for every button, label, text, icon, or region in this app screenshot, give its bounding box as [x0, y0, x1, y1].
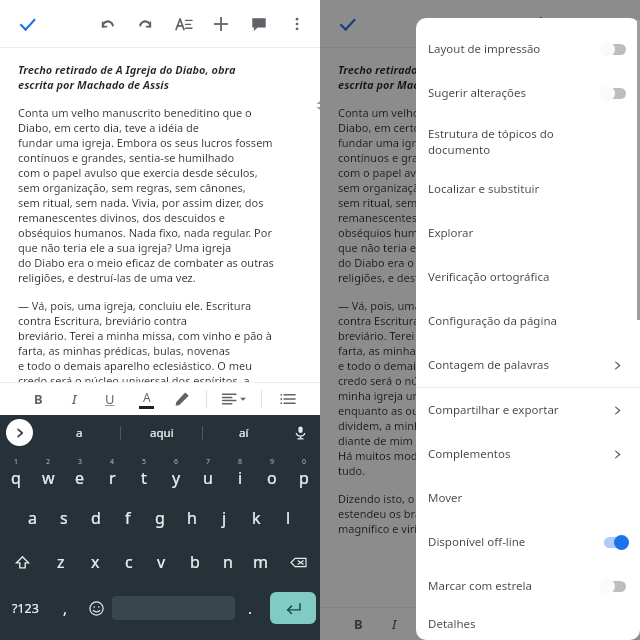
- button[interactable]: Contagem de palavras: [416, 343, 640, 387]
- button[interactable]: s: [48, 496, 80, 540]
- staticText: religiões, e destruí-las de uma vez.: [18, 270, 196, 285]
- button[interactable]: Redo: [446, 5, 484, 43]
- button[interactable]: aí: [203, 415, 284, 450]
- button[interactable]: More options: [598, 5, 636, 43]
- button[interactable]: Configuração da página: [416, 299, 640, 343]
- button[interactable]: Disponível off-line: [416, 520, 640, 564]
- button[interactable]: 6: [160, 450, 192, 496]
- button[interactable]: Underline: [92, 382, 128, 415]
- staticText: i: [238, 467, 243, 489]
- staticText: Explorar: [428, 225, 630, 241]
- staticText: breviário. Terei a minha missa, com vinh…: [18, 328, 273, 343]
- button[interactable]: Text color: [128, 382, 164, 415]
- staticText: w: [42, 467, 55, 489]
- button[interactable]: 2: [32, 450, 64, 496]
- button[interactable]: Backspace: [277, 540, 320, 584]
- staticText: Trecho retirado de A Igreja do Diabo, ob…: [338, 62, 556, 92]
- button[interactable]: Compartilhar e exportar: [416, 388, 640, 432]
- button[interactable]: Estrutura de tópicos do documento: [416, 115, 640, 167]
- button[interactable]: Alignment: [213, 382, 255, 415]
- button[interactable]: Bold: [340, 607, 376, 640]
- staticText: u: [203, 467, 213, 489]
- button[interactable]: Detalhes: [416, 608, 640, 640]
- button[interactable]: Insert: [202, 5, 240, 43]
- button[interactable]: ?123: [0, 584, 50, 632]
- staticText: tudo.: [338, 463, 366, 478]
- button[interactable]: Explorar: [416, 211, 640, 255]
- button[interactable]: x: [78, 540, 112, 584]
- button[interactable]: 7: [192, 450, 224, 496]
- button[interactable]: 1: [0, 450, 32, 496]
- button[interactable]: Scroll: [305, 90, 335, 120]
- button[interactable]: 8: [224, 450, 256, 496]
- button[interactable]: Format: [484, 5, 522, 43]
- button[interactable]: Format: [164, 5, 202, 43]
- button[interactable]: Verificação ortográfica: [416, 255, 640, 299]
- staticText: diante de mim estará Maomé nem Lutero.: [338, 433, 556, 448]
- button[interactable]: 9: [256, 450, 288, 496]
- staticText: 2: [46, 457, 51, 467]
- button[interactable]: m: [244, 540, 277, 584]
- button[interactable]: Complementos: [416, 432, 640, 476]
- button[interactable]: b: [178, 540, 211, 584]
- staticText: sem ritual, sem nada. Vivia, por assim d…: [18, 195, 264, 210]
- button[interactable]: Underline: [412, 607, 448, 640]
- staticText: contra Escritura, breviário contra: [18, 313, 187, 328]
- button[interactable]: Italic: [56, 382, 92, 415]
- button[interactable]: c: [112, 540, 145, 584]
- button[interactable]: .: [235, 584, 266, 632]
- button[interactable]: Redo: [126, 5, 164, 43]
- button[interactable]: Enter: [270, 592, 316, 624]
- button[interactable]: Localizar e substituir: [416, 167, 640, 211]
- button[interactable]: Shift: [0, 540, 44, 584]
- button[interactable]: a: [38, 415, 120, 450]
- button[interactable]: aqui: [121, 415, 202, 450]
- button[interactable]: v: [145, 540, 178, 584]
- staticText: x: [91, 551, 100, 573]
- button[interactable]: Highlight: [164, 382, 200, 415]
- button[interactable]: Voice input: [284, 415, 316, 450]
- button[interactable]: Done: [330, 7, 364, 41]
- button[interactable]: Italic: [376, 607, 412, 640]
- button[interactable]: n: [211, 540, 244, 584]
- button[interactable]: Text color: [448, 607, 484, 640]
- staticText: 6: [174, 457, 179, 467]
- button[interactable]: j: [208, 496, 240, 540]
- button[interactable]: h: [176, 496, 208, 540]
- button[interactable]: Emoji: [81, 584, 112, 632]
- staticText: 9: [270, 457, 275, 467]
- button[interactable]: Comment: [560, 5, 598, 43]
- button[interactable]: Done: [10, 7, 44, 41]
- button[interactable]: g: [144, 496, 176, 540]
- button[interactable]: Insert: [522, 5, 560, 43]
- button[interactable]: Comment: [240, 5, 278, 43]
- button[interactable]: 0: [288, 450, 320, 496]
- button[interactable]: z: [44, 540, 78, 584]
- staticText: b: [190, 551, 200, 573]
- staticText: Conta um velho manuscrito beneditino que…: [338, 105, 572, 120]
- button[interactable]: d: [80, 496, 112, 540]
- button[interactable]: Mover: [416, 476, 640, 520]
- staticText: .: [248, 598, 253, 618]
- button[interactable]: Undo: [88, 5, 126, 43]
- button[interactable]: 5: [128, 450, 160, 496]
- button[interactable]: Layout de impressão: [416, 27, 640, 71]
- button[interactable]: Bold: [20, 382, 56, 415]
- button[interactable]: k: [240, 496, 272, 540]
- button[interactable]: l: [272, 496, 304, 540]
- button[interactable]: List: [270, 382, 306, 415]
- button[interactable]: f: [112, 496, 144, 540]
- button[interactable]: ,: [50, 584, 81, 632]
- button[interactable]: Marcar com estrela: [416, 564, 640, 608]
- button[interactable]: 3: [64, 450, 96, 496]
- button[interactable]: Undo: [408, 5, 446, 43]
- button[interactable]: Sugerir alterações: [416, 71, 640, 115]
- button[interactable]: Expand: [6, 419, 33, 446]
- button[interactable]: a: [16, 496, 48, 540]
- button[interactable]: 4: [96, 450, 128, 496]
- button[interactable]: More options: [278, 5, 316, 43]
